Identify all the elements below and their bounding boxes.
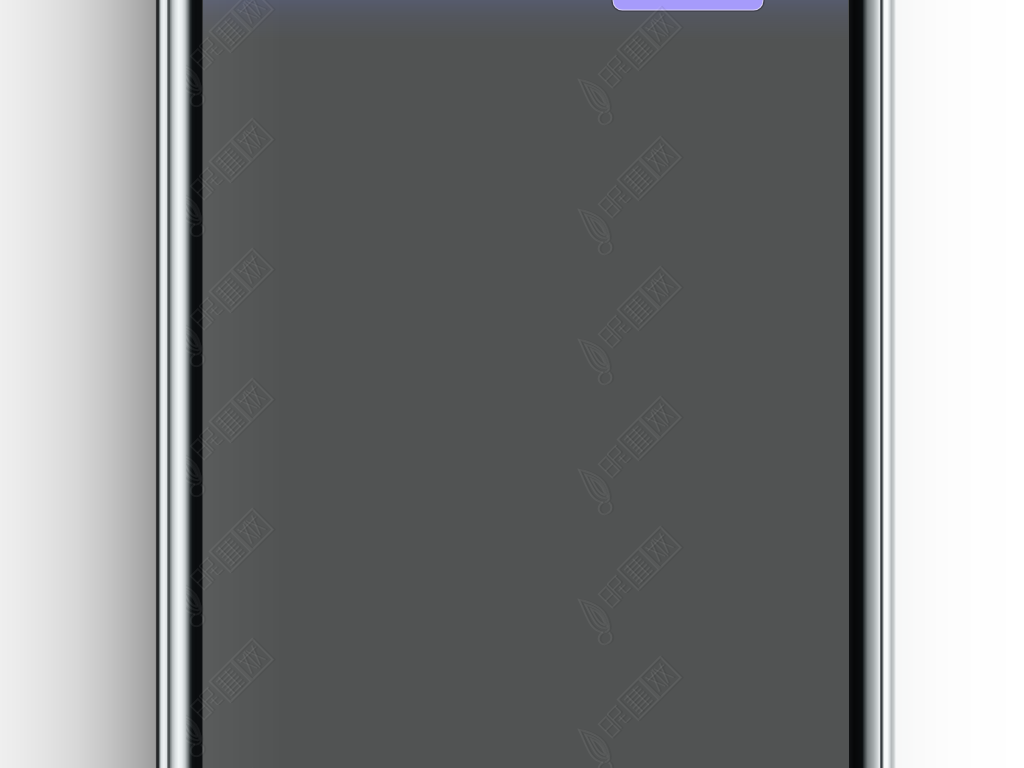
button[interactable]: Purple action button xyxy=(614,0,763,10)
